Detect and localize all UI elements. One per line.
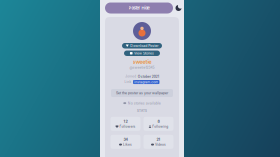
button[interactable]: Poster Hide <box>105 2 173 13</box>
button[interactable]: View Stories <box>124 50 160 56</box>
button[interactable]: 21 <box>143 135 173 149</box>
button[interactable]: 12 <box>110 117 140 131</box>
staticText: Videos <box>155 143 166 146</box>
staticText: Followers <box>119 125 135 128</box>
staticText: Download Poster <box>130 44 158 48</box>
button[interactable]: Download Poster <box>122 43 162 48</box>
staticText: 34 <box>123 137 127 142</box>
button[interactable]: Toggle dark mode <box>175 4 182 11</box>
button[interactable]: instagram.com <box>133 80 159 84</box>
staticText: Set the poster as your wallpaper <box>116 91 168 95</box>
staticText: Joined <box>125 75 136 78</box>
staticText: 12 <box>123 119 127 124</box>
staticText: STATS <box>137 109 147 113</box>
staticText: Following <box>152 125 168 128</box>
staticText: No stories available <box>128 101 161 105</box>
staticText: 8 <box>157 119 159 124</box>
staticText: 21 <box>156 137 160 142</box>
staticText: Likes <box>123 143 132 146</box>
button[interactable]: Set the poster as your wallpaper <box>111 89 173 97</box>
button[interactable]: 8 <box>143 117 173 131</box>
button[interactable]: 34 <box>110 135 140 149</box>
staticText: October 2021 <box>138 74 159 78</box>
staticText: @sweetie12345 <box>129 65 154 69</box>
staticText: instagram.com <box>134 80 158 84</box>
staticText: View Stories <box>134 51 154 55</box>
staticText: Link <box>124 80 131 84</box>
staticText: Poster Hide <box>128 6 149 10</box>
staticText: sweetie <box>132 58 151 65</box>
